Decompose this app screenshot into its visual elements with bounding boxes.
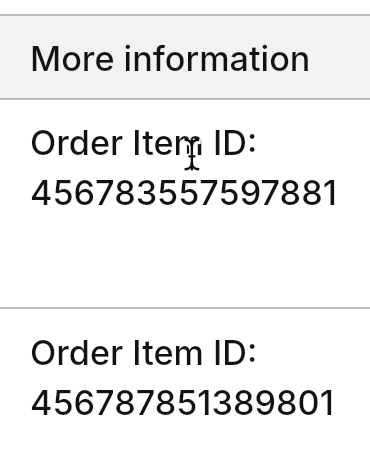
staticText: Order Item ID: 456783557597881 [30, 122, 337, 213]
button[interactable]: Order Item ID: 456787851389801 [0, 309, 370, 466]
button[interactable]: More information [0, 16, 370, 98]
button[interactable]: Order Item ID: 456783557597881 [0, 100, 370, 307]
staticText: More information [30, 38, 311, 79]
staticText: Order Item ID: 456787851389801 [30, 332, 334, 423]
